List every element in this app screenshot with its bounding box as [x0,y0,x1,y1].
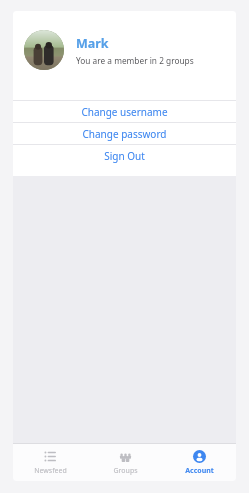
staticText: Account [185,466,214,476]
staticText: Change password [82,127,167,141]
button[interactable]: Profile photo [13,11,236,89]
button[interactable]: Groups [88,444,162,481]
button[interactable]: Sign Out [13,145,236,166]
button[interactable]: Change password [13,123,236,144]
staticText: You are a member in 2 groups [76,55,194,66]
staticText: Mark [76,35,109,52]
staticText: Sign Out [104,149,145,163]
button[interactable]: Change username [13,101,236,122]
button[interactable]: Account [162,444,236,481]
staticText: Groups [113,466,138,476]
staticText: Change username [81,105,168,119]
button[interactable]: Newsfeed [13,444,88,481]
other: Profile photo [24,30,64,70]
staticText: Newsfeed [34,466,67,476]
